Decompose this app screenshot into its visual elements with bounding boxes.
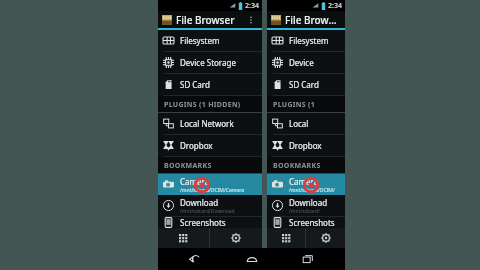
button[interactable]: Camera [267, 174, 345, 195]
staticText: Filesystem [289, 35, 329, 46]
button[interactable]: Home [232, 248, 272, 270]
staticText: Local Network [289, 118, 341, 129]
button[interactable]: Local Network [158, 113, 262, 134]
button[interactable]: More options [244, 13, 258, 27]
staticText: PLUGINS (1 HIDDEN) [273, 100, 345, 110]
staticText: Download [289, 197, 328, 208]
staticText: /mnt/sdcard/DCIM/Camera [289, 187, 341, 194]
button[interactable]: Download [267, 195, 345, 216]
button[interactable]: SD Card [158, 74, 262, 95]
staticText: BOOKMARKS [273, 161, 321, 171]
staticText: PLUGINS (1 HIDDEN) [164, 100, 241, 110]
staticText: Camera [289, 176, 319, 187]
staticText: /mnt/sdcard/Download [180, 208, 235, 215]
staticText: Screenshots [289, 217, 335, 228]
staticText: SD Card [289, 79, 319, 90]
staticText: /mnt/sdcard/Download [289, 208, 341, 215]
button[interactable]: Recent apps [288, 248, 328, 270]
staticText: 2:34 [328, 1, 342, 11]
button[interactable]: Download [158, 195, 262, 216]
button[interactable]: File Browser [158, 11, 262, 28]
button[interactable]: Screenshots [158, 217, 262, 228]
staticText: Screenshots [180, 217, 226, 228]
button[interactable]: Dropbox [267, 135, 345, 156]
button[interactable]: Settings [306, 228, 345, 248]
button[interactable]: Apps grid [158, 228, 209, 248]
button[interactable]: Filesystem [267, 30, 345, 51]
staticText: Device Storage [180, 57, 236, 68]
staticText: 2:34 [245, 1, 259, 11]
staticText: Dropbox [289, 140, 322, 151]
button[interactable]: Device Storage [267, 52, 345, 73]
staticText: Dropbox [180, 140, 213, 151]
button[interactable]: Settings [210, 228, 262, 248]
staticText: Download [180, 197, 219, 208]
button[interactable]: SD Card [267, 74, 345, 95]
staticText: Local Network [180, 118, 234, 129]
button[interactable]: Device Storage [158, 52, 262, 73]
button[interactable]: Filesystem [158, 30, 262, 51]
button[interactable]: Local Network [267, 113, 345, 134]
staticText: File Browser [176, 13, 235, 27]
button[interactable]: Camera [158, 174, 262, 195]
staticText: /mnt/sdcard/DCIM/Camera [180, 187, 244, 194]
staticText: Filesystem [180, 35, 220, 46]
button[interactable]: Screenshots [267, 217, 345, 228]
button[interactable]: Back [175, 248, 215, 270]
staticText: Camera [180, 176, 210, 187]
button[interactable]: File Browser [267, 11, 345, 28]
staticText: Device Storage [289, 57, 341, 68]
staticText: SD Card [180, 79, 210, 90]
staticText: BOOKMARKS [164, 161, 212, 171]
button[interactable]: Apps grid [267, 228, 305, 248]
staticText: File Browser [285, 13, 341, 27]
button[interactable]: Dropbox [158, 135, 262, 156]
